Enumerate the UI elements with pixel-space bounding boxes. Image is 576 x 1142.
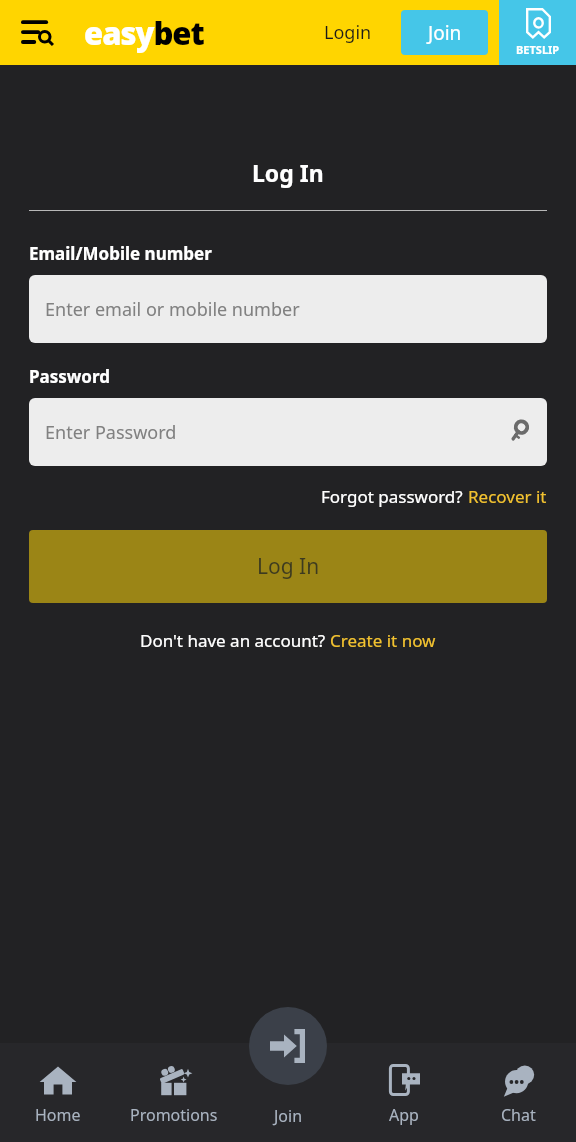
staticText: easybet: [84, 12, 204, 54]
button[interactable]: Show password: [503, 417, 533, 447]
button[interactable]: Log In: [29, 530, 547, 603]
button[interactable]: BETSLIP: [499, 0, 576, 65]
staticText: Create it now: [330, 629, 436, 652]
button[interactable]: App: [346, 1043, 461, 1142]
staticText: Recover it: [468, 485, 547, 508]
button[interactable]: Recover it: [468, 485, 547, 508]
button[interactable]: Login: [324, 20, 372, 45]
button[interactable]: Enter email or mobile number: [29, 275, 547, 343]
staticText: Log In: [252, 157, 324, 188]
staticText: Login: [324, 20, 372, 45]
staticText: Promotions: [130, 1104, 218, 1126]
button[interactable]: Join: [401, 10, 488, 55]
button[interactable]: Enter Password: [29, 398, 547, 466]
staticText: Enter email or mobile number: [45, 297, 300, 322]
staticText: BETSLIP: [516, 42, 560, 57]
staticText: Join: [428, 20, 462, 46]
staticText: Password: [29, 365, 110, 388]
staticText: Chat: [501, 1104, 536, 1126]
button[interactable]: Home: [0, 1043, 116, 1142]
staticText: Don't have an account?: [140, 629, 330, 652]
staticText: App: [389, 1104, 419, 1126]
staticText: Enter Password: [45, 420, 177, 445]
staticText: Join: [274, 1105, 303, 1127]
button[interactable]: Create it now: [330, 629, 436, 652]
staticText: Log In: [257, 552, 320, 581]
button[interactable]: Menu and search: [12, 8, 62, 58]
staticText: Home: [35, 1104, 81, 1126]
button[interactable]: Join: [231, 1043, 346, 1142]
staticText: Forgot password?: [321, 485, 468, 508]
button[interactable]: Promotions: [116, 1043, 231, 1142]
staticText: Email/Mobile number: [29, 242, 212, 265]
button[interactable]: Join: [249, 1007, 327, 1085]
button[interactable]: Chat: [461, 1043, 576, 1142]
